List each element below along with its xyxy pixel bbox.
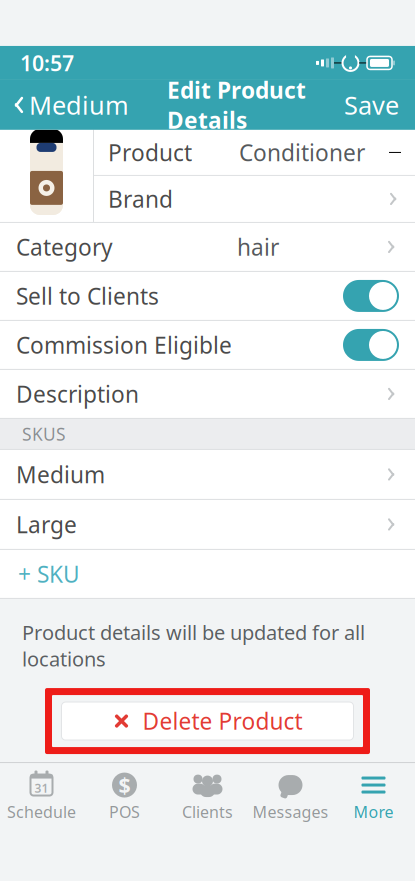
button[interactable]: Product bbox=[94, 130, 415, 175]
button[interactable]: 31 bbox=[0, 770, 83, 824]
staticText: POS bbox=[109, 801, 140, 822]
button[interactable]: More bbox=[332, 770, 415, 824]
button[interactable]: $ bbox=[83, 770, 166, 824]
button[interactable]: + SKU bbox=[0, 550, 415, 598]
button[interactable]: Brand bbox=[94, 176, 415, 222]
button[interactable]: Large bbox=[0, 500, 415, 549]
staticText: Brand bbox=[108, 184, 173, 214]
button[interactable]: Delete Product bbox=[61, 702, 353, 740]
staticText: Messages bbox=[252, 801, 328, 822]
button[interactable]: Medium bbox=[0, 80, 129, 130]
staticText: Commission Eligible bbox=[16, 330, 232, 360]
button[interactable]: Sell to Clients bbox=[0, 272, 415, 320]
staticText: Clients bbox=[182, 801, 233, 822]
staticText: hair bbox=[237, 232, 279, 262]
button[interactable]: Commission Eligible bbox=[0, 321, 415, 369]
staticText: Category bbox=[16, 232, 113, 262]
staticText: More bbox=[353, 801, 393, 822]
staticText: $ bbox=[118, 771, 130, 799]
staticText: Medium bbox=[29, 88, 129, 122]
staticText: Description bbox=[16, 379, 139, 409]
staticText: Conditioner bbox=[239, 137, 365, 167]
staticText: SKUS bbox=[22, 422, 66, 445]
button[interactable]: Description bbox=[0, 370, 415, 418]
staticText: Medium bbox=[16, 459, 105, 489]
staticText: Product details will be updated for all … bbox=[22, 619, 365, 672]
staticText: Edit Product Details bbox=[167, 75, 306, 135]
staticText: 31 bbox=[34, 780, 48, 796]
staticText: Delete Product bbox=[142, 706, 302, 736]
staticText: Schedule bbox=[7, 801, 76, 822]
staticText: Large bbox=[16, 509, 77, 539]
button[interactable]: Messages bbox=[249, 770, 332, 824]
staticText: Product bbox=[108, 137, 192, 167]
button[interactable]: Category bbox=[0, 223, 415, 271]
staticText: Sell to Clients bbox=[16, 281, 159, 311]
button[interactable]: Clients bbox=[166, 770, 249, 824]
staticText: + SKU bbox=[18, 559, 80, 589]
staticText: 10:57 bbox=[20, 49, 74, 77]
button[interactable]: Save bbox=[344, 80, 415, 130]
button[interactable]: Medium bbox=[0, 450, 415, 499]
staticText: Save bbox=[344, 88, 399, 122]
